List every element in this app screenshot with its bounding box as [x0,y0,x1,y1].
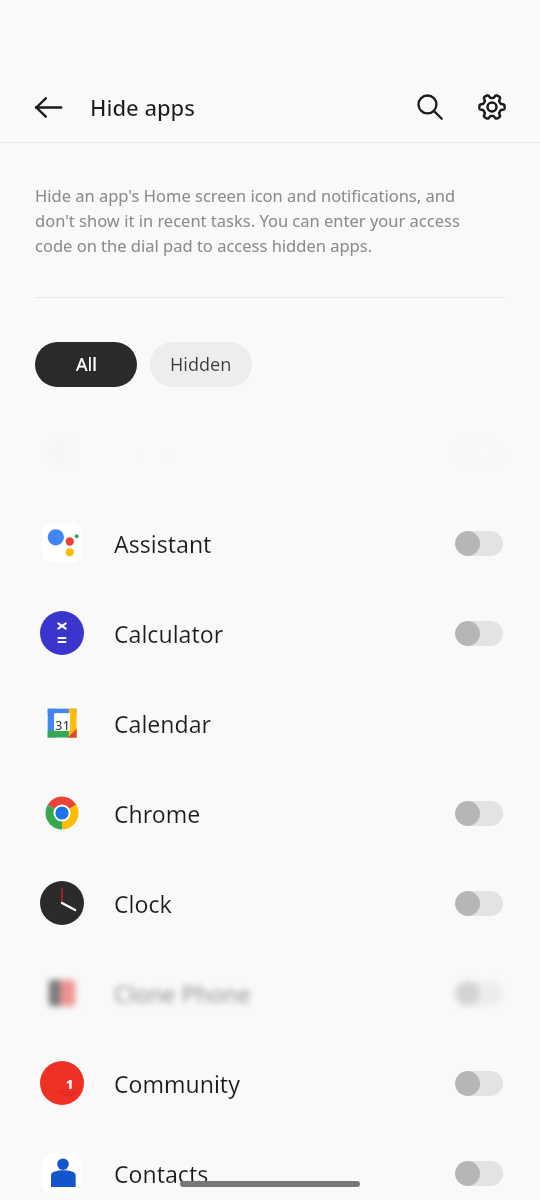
staticText: Assistant [114,528,212,559]
button[interactable]: 31 [0,678,540,768]
button[interactable]: Toggle Clone Phone [455,981,503,1006]
button[interactable]: Clock [0,858,540,948]
button[interactable]: Chrome [0,768,540,858]
staticText: Calculator [114,618,224,649]
staticText: Clone Phone [114,978,251,1009]
staticText: All [76,352,97,377]
button[interactable]: Settings [466,81,518,133]
staticText: Clock [114,888,172,919]
button[interactable]: Contacts [0,1128,540,1200]
button[interactable]: Search [404,81,456,133]
button[interactable]: Assistant [0,498,540,588]
staticText: Calendar [114,708,212,739]
staticText: 31 [55,716,70,734]
button[interactable]: Toggle Chrome [455,801,503,826]
button[interactable]: Toggle Contacts [455,1161,503,1186]
button[interactable]: All [35,342,137,387]
button[interactable]: Toggle Assistant [455,531,503,556]
staticText: Hidden [170,352,232,377]
button[interactable]: Toggle Calculator [455,621,503,646]
staticText: Chrome [114,798,201,829]
staticText: 1 [66,1075,74,1093]
staticText: Contacts [114,1158,209,1189]
button[interactable]: 1 [0,1038,540,1128]
staticText: Hide an app's Home screen icon and notif… [35,184,490,256]
button[interactable]: Toggle Community [455,1071,503,1096]
button[interactable]: Clone Phone [0,948,540,1038]
button[interactable]: Back [22,81,74,133]
staticText: Community [114,1068,240,1099]
button[interactable]: Calculator [0,588,540,678]
button[interactable]: Hidden [150,342,252,387]
staticText: Hide apps [90,92,195,122]
button[interactable]: Toggle Clock [455,891,503,916]
